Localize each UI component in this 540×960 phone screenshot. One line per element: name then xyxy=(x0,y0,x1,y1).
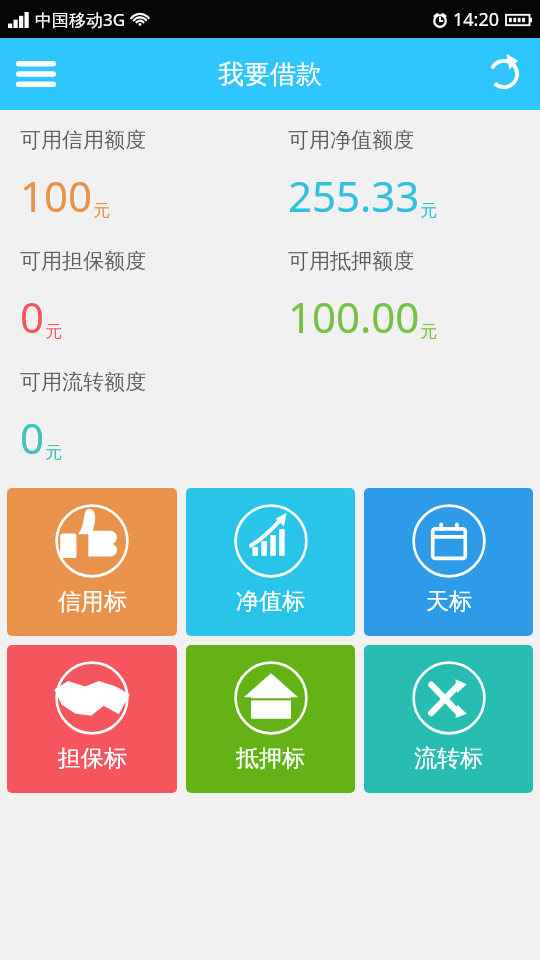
button[interactable]: 担保标 xyxy=(7,645,177,793)
staticText: 14:20 xyxy=(453,7,500,32)
staticText: 可用流转额度 xyxy=(20,369,146,395)
staticText: 净值标 xyxy=(236,587,305,616)
staticText: 可用担保额度 xyxy=(20,248,146,274)
staticText: 可用净值额度 xyxy=(288,127,414,153)
button[interactable]: 天标 xyxy=(364,488,533,636)
button[interactable]: 流转标 xyxy=(364,645,533,793)
staticText: 元 xyxy=(420,321,437,342)
button[interactable]: 抵押标 xyxy=(186,645,355,793)
staticText: 担保标 xyxy=(58,744,127,773)
button[interactable]: Menu xyxy=(10,48,62,100)
staticText: 可用信用额度 xyxy=(20,127,146,153)
staticText: 信用标 xyxy=(58,587,127,616)
staticText: 天标 xyxy=(426,587,472,616)
button[interactable]: 净值标 xyxy=(186,488,355,636)
staticText: 元 xyxy=(45,321,62,342)
staticText: 0 xyxy=(20,409,45,466)
staticText: 流转标 xyxy=(414,744,483,773)
button[interactable]: Refresh xyxy=(478,48,530,100)
staticText: 100.00 xyxy=(288,288,420,345)
staticText: 我要借款 xyxy=(218,58,322,91)
staticText: 元 xyxy=(93,200,110,221)
staticText: 元 xyxy=(420,200,437,221)
staticText: 0 xyxy=(20,288,45,345)
staticText: 中国移动3G xyxy=(35,8,126,31)
staticText: 255.33 xyxy=(288,167,420,224)
staticText: 100 xyxy=(20,167,93,224)
staticText: 可用抵押额度 xyxy=(288,248,414,274)
staticText: 抵押标 xyxy=(236,744,305,773)
button[interactable]: 信用标 xyxy=(7,488,177,636)
staticText: 元 xyxy=(45,442,62,463)
